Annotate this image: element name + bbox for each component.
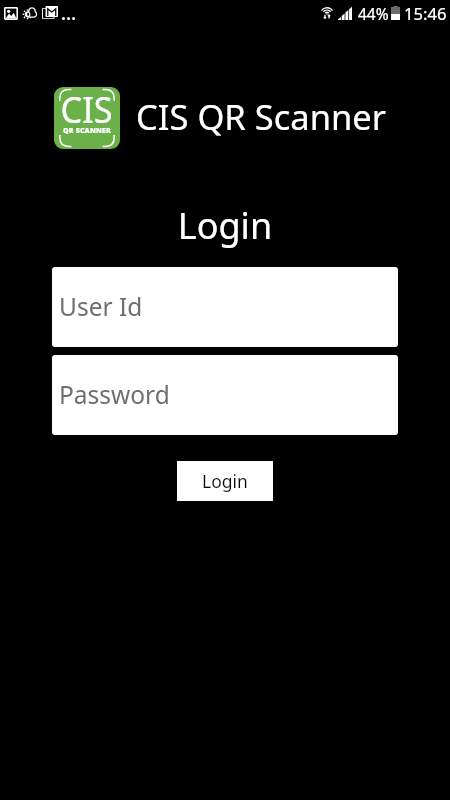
staticText: Password [59,378,170,411]
button[interactable]: User Id [52,267,398,347]
button[interactable]: Login [177,461,273,501]
staticText: Login [202,469,248,493]
staticText: CIS QR Scanner [136,93,386,140]
staticText: 44% [358,3,389,24]
staticText: 15:46 [404,2,447,25]
staticText: User Id [59,290,143,323]
staticText: QR SCANNER [63,126,111,136]
button[interactable]: Password [52,355,398,435]
staticText: Login [0,201,450,250]
button[interactable]: CIS [54,87,370,149]
staticText: CIS [60,87,113,134]
